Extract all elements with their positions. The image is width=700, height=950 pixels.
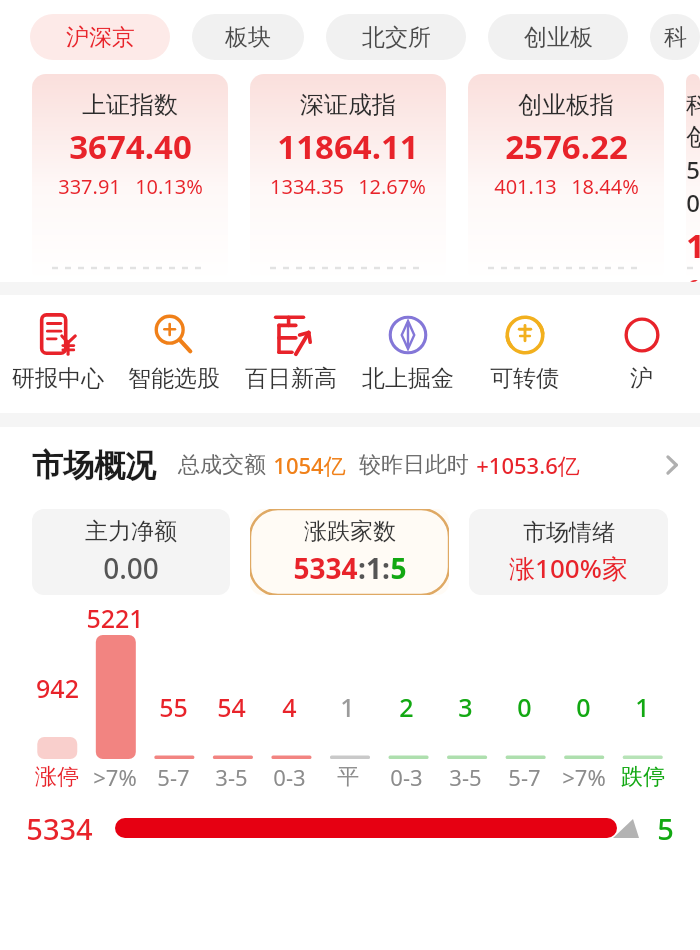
staticText: 12.67% <box>358 173 426 200</box>
button[interactable]: 创业板 <box>488 14 628 60</box>
staticText: 科 <box>664 23 687 52</box>
button[interactable]: 沪 <box>583 295 700 413</box>
staticText: 55 <box>159 690 188 724</box>
staticText: 54 <box>217 690 246 724</box>
staticText: 3674.40 <box>69 124 192 169</box>
staticText: 0-3 <box>390 762 423 792</box>
button[interactable]: 研报中心 <box>0 295 116 413</box>
button[interactable]: 可转债 <box>466 295 583 413</box>
button[interactable]: 市场概况 <box>0 427 700 503</box>
staticText: 3-5 <box>449 762 482 792</box>
staticText: 涨跌家数 <box>304 517 396 546</box>
staticText: 研报中心 <box>12 364 104 393</box>
staticText: 0 <box>576 690 591 724</box>
staticText: 5334 <box>26 809 93 848</box>
staticText: 市场情绪 <box>523 518 615 547</box>
staticText: 板块 <box>225 23 271 52</box>
button[interactable]: 市场情绪 <box>469 509 668 595</box>
staticText: 智能选股 <box>128 364 220 393</box>
other: 查看更多 <box>660 453 684 477</box>
staticText: 942 <box>36 671 79 705</box>
staticText: 2 <box>399 690 414 724</box>
staticText: 401.13 <box>494 173 557 200</box>
staticText: 0.00 <box>103 549 159 587</box>
button[interactable]: 深证成指 <box>250 74 446 282</box>
staticText: +1053.6亿 <box>476 450 580 480</box>
staticText: 总成交额 <box>178 451 266 479</box>
button[interactable]: 科创50 <box>686 74 700 282</box>
staticText: 1000.00 <box>686 223 700 282</box>
staticText: >7% <box>562 762 606 792</box>
button[interactable]: 百日新高 <box>232 295 349 413</box>
staticText: 沪深京 <box>66 23 135 52</box>
staticText: 5 <box>657 809 674 848</box>
button[interactable]: 北上掘金 <box>349 295 466 413</box>
staticText: 10.13% <box>135 173 203 200</box>
staticText: 可转债 <box>490 364 559 393</box>
staticText: 2576.22 <box>505 124 628 169</box>
staticText: 1 <box>635 690 650 724</box>
staticText: 北交所 <box>362 23 431 52</box>
staticText: 市场概况 <box>32 446 156 485</box>
button[interactable]: 涨跌家数 <box>250 509 449 595</box>
staticText: 3-5 <box>215 762 248 792</box>
button[interactable]: 上证指数 <box>32 74 228 282</box>
staticText: 18.44% <box>571 173 639 200</box>
staticText: 4 <box>282 690 297 724</box>
button[interactable]: 智能选股 <box>116 295 232 413</box>
staticText: 5 <box>390 549 407 587</box>
staticText: 创业板 <box>524 23 593 52</box>
staticText: 0-3 <box>273 762 306 792</box>
staticText: 337.91 <box>58 173 121 200</box>
staticText: 深证成指 <box>300 90 396 120</box>
button[interactable]: 创业板指 <box>468 74 664 282</box>
staticText: 1054亿 <box>273 450 346 480</box>
staticText: 较昨日此时 <box>359 451 469 479</box>
staticText: 上证指数 <box>82 90 178 120</box>
staticText: 5-7 <box>157 762 190 792</box>
staticText: >7% <box>93 762 137 792</box>
staticText: 5-7 <box>508 762 541 792</box>
staticText: 百日新高 <box>245 364 337 393</box>
staticText: 1 <box>340 690 355 724</box>
staticText: 3 <box>458 690 473 724</box>
staticText: 沪 <box>630 364 653 393</box>
staticText: :1: <box>358 549 390 587</box>
staticText: 0 <box>517 690 532 724</box>
staticText: 主力净额 <box>85 517 177 546</box>
button[interactable]: 主力净额 <box>32 509 230 595</box>
staticText: 平 <box>337 763 359 791</box>
staticText: 跌停 <box>621 763 665 791</box>
button[interactable]: 科 <box>650 14 700 60</box>
staticText: 创业板指 <box>518 90 614 120</box>
staticText: 5334 <box>293 549 358 587</box>
staticText: 5221 <box>86 601 144 635</box>
staticText: 11864.11 <box>277 124 419 169</box>
button[interactable]: 5334 <box>26 795 674 861</box>
button[interactable]: 板块 <box>192 14 304 60</box>
button[interactable]: 沪深京 <box>30 14 170 60</box>
staticText: 1334.35 <box>270 173 344 200</box>
staticText: 涨停 <box>35 763 79 791</box>
staticText: 北上掘金 <box>362 364 454 393</box>
button[interactable]: 北交所 <box>326 14 466 60</box>
staticText: 涨100%家 <box>509 550 628 586</box>
staticText: 科创50 <box>686 90 700 219</box>
